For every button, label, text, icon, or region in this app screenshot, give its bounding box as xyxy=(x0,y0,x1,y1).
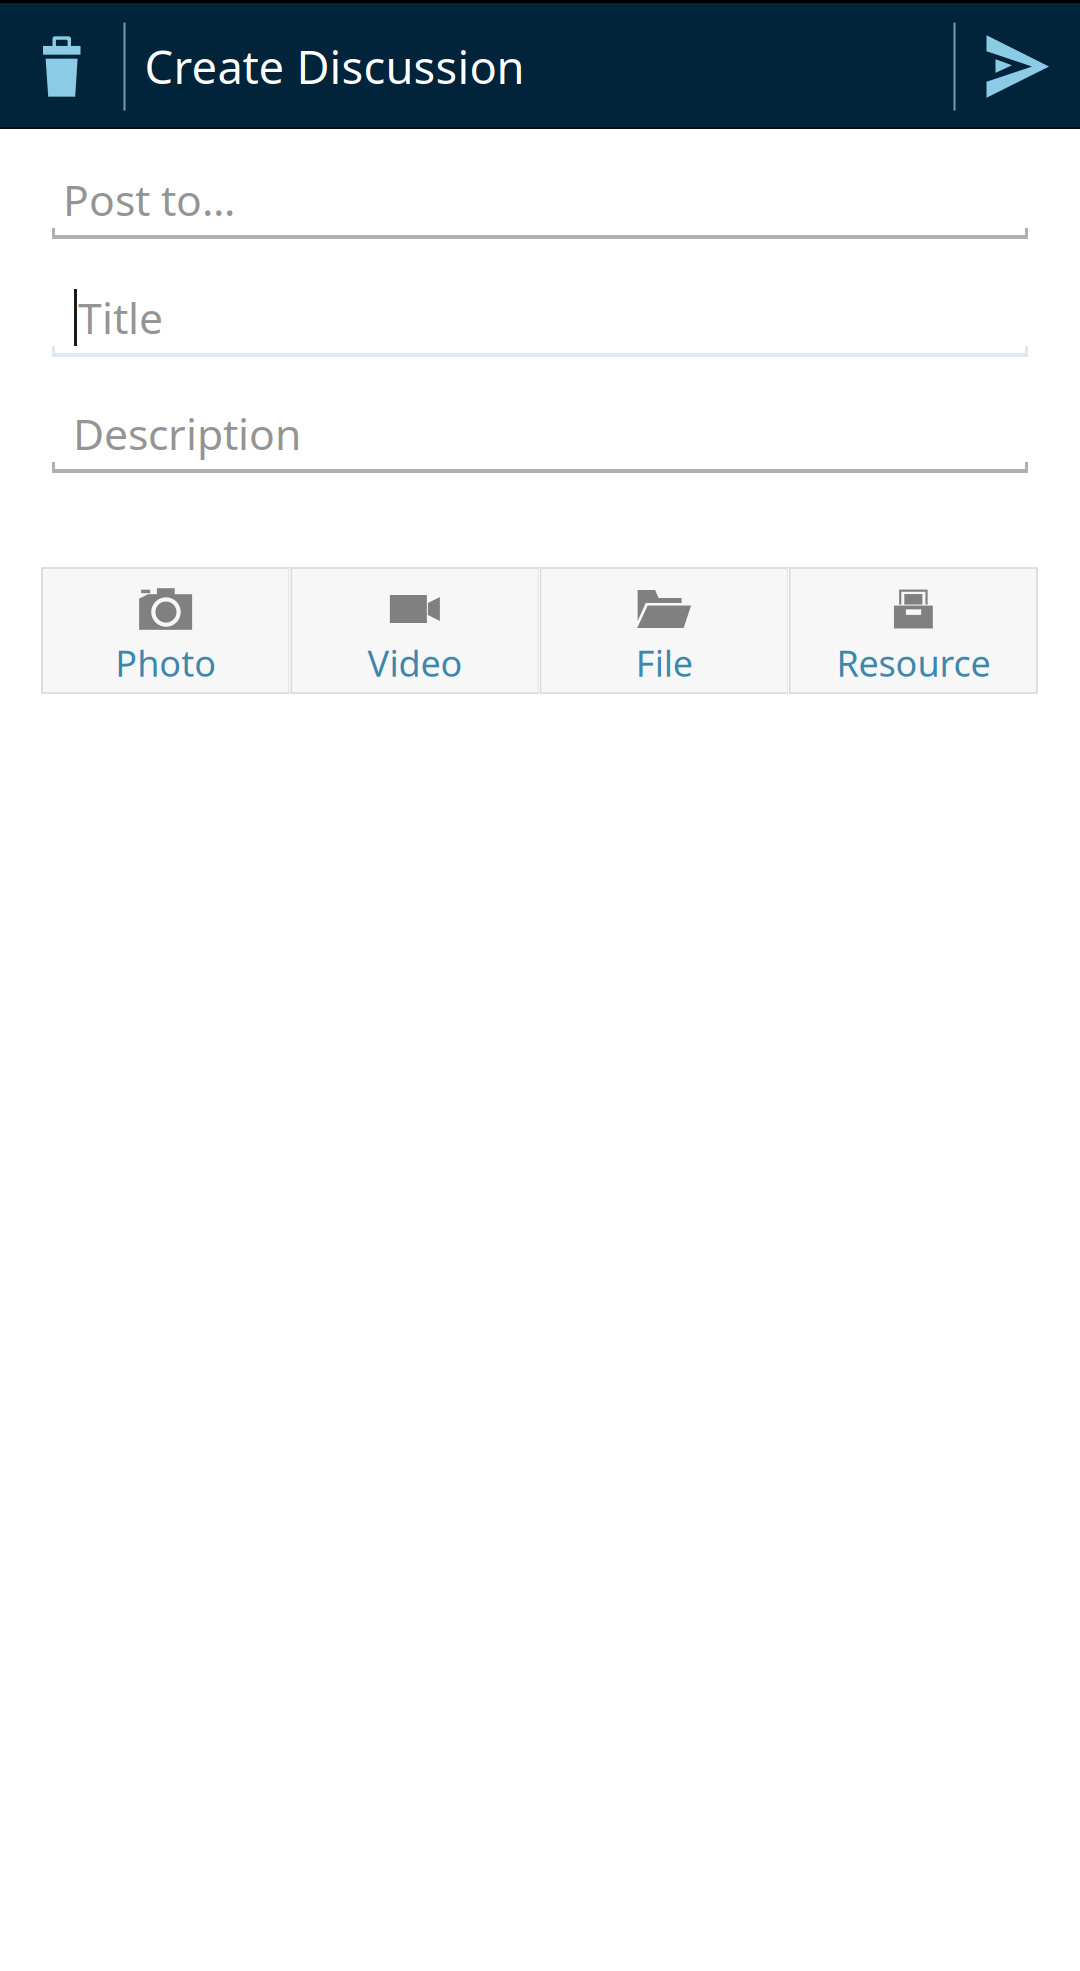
staticText: File xyxy=(636,639,693,687)
button[interactable]: File xyxy=(540,568,788,693)
staticText: Create Discussion xyxy=(144,36,524,97)
staticText: Video xyxy=(367,639,462,687)
button[interactable]: Resource xyxy=(790,568,1037,693)
button[interactable]: Video xyxy=(291,568,538,693)
staticText: Resource xyxy=(836,639,990,687)
staticText: Post to... xyxy=(63,171,235,228)
staticText: Photo xyxy=(115,639,216,687)
button[interactable]: Discard discussion xyxy=(0,6,123,127)
staticText: Description xyxy=(73,405,301,462)
button[interactable]: Send xyxy=(955,6,1080,127)
staticText: Title xyxy=(78,289,163,346)
button[interactable]: Photo xyxy=(42,568,289,693)
